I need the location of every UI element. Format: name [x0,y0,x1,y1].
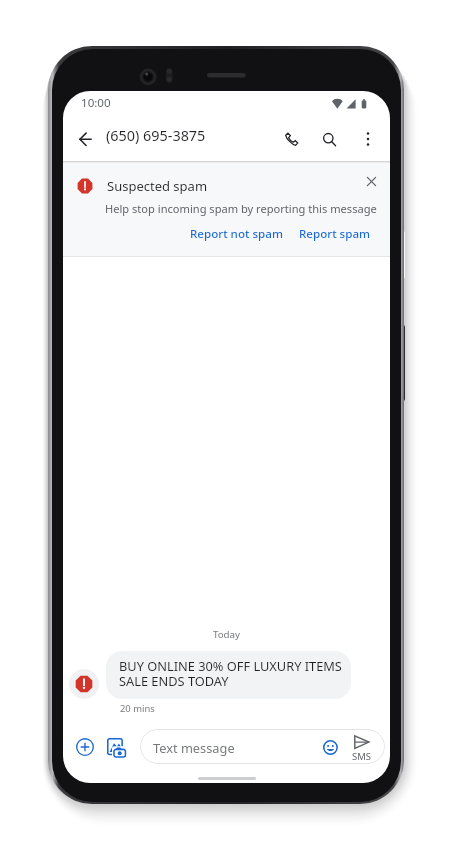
button[interactable]: Emoji [317,734,343,760]
staticText: Report spam [299,226,371,242]
button[interactable]: Back [65,119,105,159]
staticText: Text message [153,739,235,756]
staticText: 20 mins [120,702,155,715]
staticText: (650) 695-3875 [106,126,206,146]
button[interactable]: Add attachment [71,733,99,761]
button[interactable]: Report not spam [184,222,289,246]
button[interactable]: Gallery and camera [103,734,131,762]
staticText: BUY ONLINE 30% OFF LUXURY ITEMS SALE END… [119,657,342,690]
button[interactable]: Search [309,119,349,159]
button[interactable]: Dismiss [358,168,384,194]
button[interactable]: Text message [140,729,385,764]
button[interactable]: Send SMS [350,735,374,763]
staticText: Today [63,628,390,641]
staticText: Suspected spam [107,177,208,195]
staticText: SMS [352,750,372,763]
staticText: Help stop incoming spam by reporting thi… [105,201,377,216]
staticText: 10:00 [81,95,111,111]
button[interactable]: BUY ONLINE 30% OFF LUXURY ITEMS SALE END… [106,651,351,699]
button[interactable]: More options [348,119,388,159]
staticText: Report not spam [190,226,283,242]
button[interactable]: Call [271,119,311,159]
button[interactable]: Report spam [293,222,377,246]
